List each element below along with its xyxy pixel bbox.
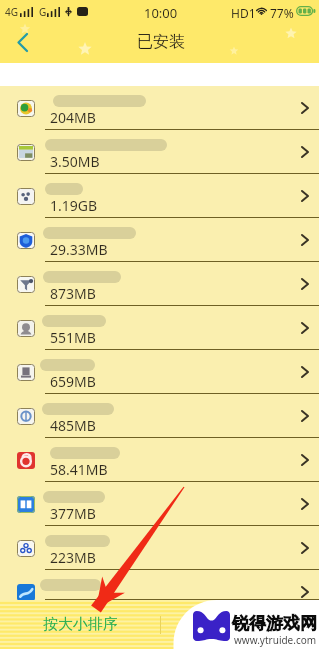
staticText: 223MB	[50, 548, 96, 567]
staticText: 377MB	[50, 504, 96, 523]
button[interactable]: 58.41MB	[0, 438, 319, 482]
staticText: 873MB	[50, 284, 96, 303]
button[interactable]: 1.19GB	[0, 174, 319, 218]
staticText: 3.50MB	[50, 152, 100, 171]
staticText: 659MB	[50, 372, 96, 391]
staticText: G	[39, 5, 47, 19]
button[interactable]: 按大小排序	[0, 600, 160, 649]
staticText: 485MB	[50, 416, 96, 435]
button[interactable]	[161, 600, 319, 649]
staticText: 已安装	[137, 32, 185, 52]
staticText: 10:00	[144, 4, 178, 22]
button[interactable]: 659MB	[0, 350, 319, 394]
staticText: 锐得游戏网	[232, 613, 317, 634]
staticText: 29.33MB	[50, 240, 108, 259]
staticText: 77%	[270, 5, 294, 21]
staticText: 1.19GB	[50, 196, 98, 215]
staticText: 204MB	[50, 108, 96, 127]
button[interactable]: 3.50MB	[0, 130, 319, 174]
staticText: 4G	[5, 5, 18, 19]
button[interactable]: Back	[7, 27, 37, 57]
button[interactable]: 204MB	[0, 86, 319, 130]
button[interactable]: 873MB	[0, 262, 319, 306]
staticText: 551MB	[50, 328, 96, 347]
staticText: HD1	[231, 5, 256, 21]
button[interactable]: 485MB	[0, 394, 319, 438]
button[interactable]: 551MB	[0, 306, 319, 350]
staticText: 58.41MB	[50, 460, 108, 479]
button[interactable]: 377MB	[0, 482, 319, 526]
staticText: www.ytruide.com	[234, 633, 317, 647]
staticText: 按大小排序	[43, 615, 118, 634]
button[interactable]: 29.33MB	[0, 218, 319, 262]
button[interactable]	[0, 570, 319, 600]
button[interactable]: 223MB	[0, 526, 319, 570]
